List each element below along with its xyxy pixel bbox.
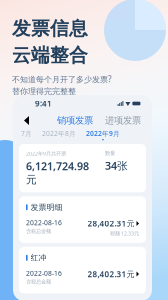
staticText: 替你理得完完整整 [12, 86, 76, 96]
staticText: 28,402.31元 [87, 218, 134, 229]
staticText: 2022年9月 [86, 129, 120, 138]
button[interactable]: 进项发票 [105, 115, 141, 126]
staticText: 数量 [105, 150, 115, 157]
staticText: 7月 [21, 129, 32, 138]
staticText: 含税总金额 [26, 228, 51, 235]
staticText: 发票明细 [31, 202, 63, 212]
staticText: 28,402.31元 [87, 269, 134, 279]
button[interactable]: 2022-08-16 [26, 218, 139, 237]
button[interactable]: 2022-08-16 [26, 269, 139, 287]
button[interactable]: 返回 [18, 112, 35, 129]
staticText: 进项发票 [105, 115, 141, 126]
button[interactable]: 7月 [21, 129, 32, 138]
staticText: 税额 12.33元 [110, 230, 139, 237]
button[interactable]: 销项发票 [57, 115, 93, 126]
staticText: 6,121,724.98元 [26, 159, 89, 186]
staticText: 含税总金额 [26, 279, 51, 285]
staticText: 不知道每个月开了多少发票? [12, 74, 111, 84]
staticText: 销项发票 [57, 115, 93, 126]
staticText: 云端整合 [12, 44, 88, 67]
button[interactable]: 2022年8月 [42, 129, 76, 138]
staticText: 34张 [105, 159, 128, 173]
button[interactable]: 2022年9月 [86, 129, 120, 140]
staticText: 2022-08-16 [26, 218, 62, 227]
staticText: 发票信息 [12, 17, 88, 40]
staticText: 9:41 [35, 98, 52, 109]
staticText: 红冲 [31, 253, 47, 263]
staticText: 2022-08-16 [26, 269, 62, 278]
staticText: 2022年9月共开票 [26, 150, 66, 157]
staticText: 2022年8月 [42, 129, 76, 138]
